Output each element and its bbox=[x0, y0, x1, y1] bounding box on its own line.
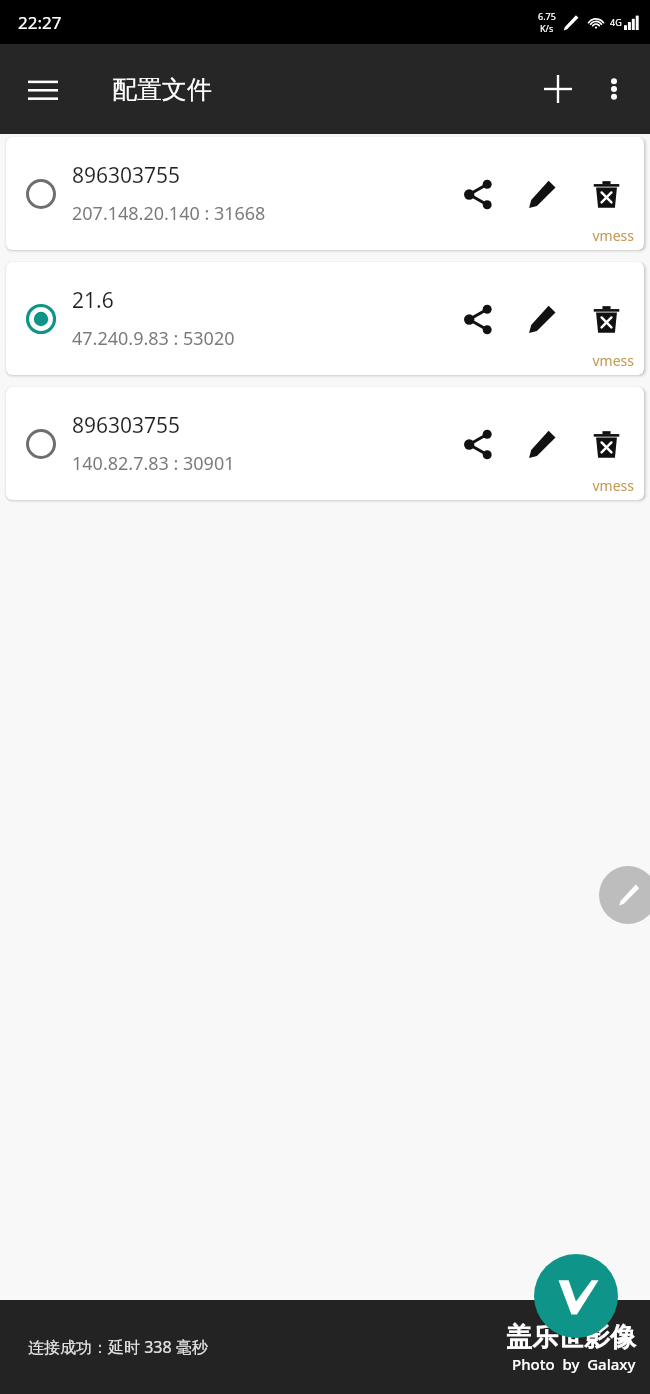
staticText: 896303755 bbox=[72, 161, 181, 190]
staticText: 6.75 bbox=[538, 10, 556, 22]
staticText: vmess bbox=[592, 351, 634, 370]
button[interactable]: Select profile bbox=[6, 137, 644, 250]
staticText: 盖乐世影像 bbox=[506, 1321, 636, 1354]
button[interactable]: Share bbox=[450, 291, 506, 347]
staticText: 配置文件 bbox=[112, 74, 212, 105]
staticText: vmess bbox=[592, 226, 634, 245]
staticText: 207.148.20.140 : 31668 bbox=[72, 201, 266, 226]
button[interactable]: Delete bbox=[578, 166, 634, 222]
button[interactable]: Edit bbox=[514, 291, 570, 347]
button[interactable]: Share bbox=[450, 416, 506, 472]
staticText: K/s bbox=[540, 22, 554, 34]
staticText: 4G bbox=[610, 16, 622, 28]
button[interactable]: Add bbox=[530, 61, 586, 117]
button[interactable]: Select profile bbox=[16, 419, 66, 469]
button[interactable]: Share bbox=[450, 166, 506, 222]
button[interactable]: Select profile bbox=[6, 387, 644, 500]
button[interactable]: Edit bbox=[599, 866, 650, 924]
staticText: 21.6 bbox=[72, 286, 114, 315]
button[interactable]: Menu bbox=[14, 60, 72, 118]
button[interactable]: Select profile bbox=[16, 294, 66, 344]
button[interactable]: Delete bbox=[578, 291, 634, 347]
button[interactable]: More options bbox=[586, 61, 642, 117]
staticText: 22:27 bbox=[18, 11, 62, 34]
staticText: 896303755 bbox=[72, 411, 181, 440]
button[interactable]: Start connection bbox=[534, 1254, 618, 1338]
staticText: 47.240.9.83 : 53020 bbox=[72, 326, 235, 351]
button[interactable]: Edit bbox=[514, 416, 570, 472]
staticText: Photo by Galaxy bbox=[512, 1354, 636, 1374]
button[interactable]: Edit bbox=[514, 166, 570, 222]
staticText: 140.82.7.83 : 30901 bbox=[72, 451, 235, 476]
staticText: vmess bbox=[592, 476, 634, 495]
button[interactable]: Select profile bbox=[16, 169, 66, 219]
button[interactable]: Select profile bbox=[6, 262, 644, 375]
staticText: 连接成功：延时 338 毫秒 bbox=[28, 1336, 208, 1358]
button[interactable]: Delete bbox=[578, 416, 634, 472]
